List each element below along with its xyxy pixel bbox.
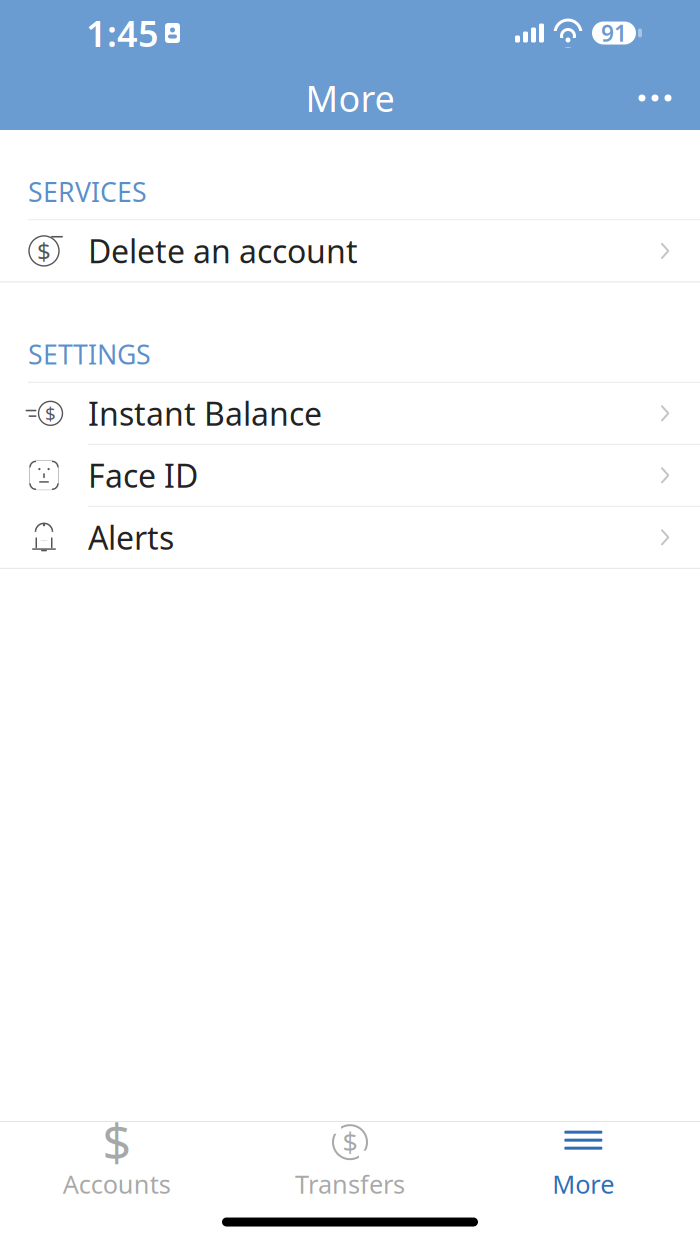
- staticText: $: [37, 235, 51, 267]
- button[interactable]: $: [0, 1122, 233, 1200]
- button[interactable]: More options: [624, 70, 686, 126]
- staticText: 1:45: [86, 9, 159, 57]
- staticText: Alerts: [88, 516, 174, 559]
- staticText: Accounts: [63, 1167, 171, 1201]
- staticText: 91: [601, 18, 627, 48]
- staticText: $: [102, 1108, 131, 1176]
- button[interactable]: More: [467, 1122, 700, 1200]
- staticText: Delete an account: [88, 230, 358, 272]
- button[interactable]: $: [233, 1122, 467, 1200]
- button[interactable]: $: [0, 383, 700, 444]
- staticText: $: [45, 401, 56, 426]
- staticText: $: [342, 1124, 357, 1160]
- button[interactable]: Alerts: [0, 507, 700, 568]
- button[interactable]: Face ID: [0, 445, 700, 506]
- staticText: More: [305, 74, 394, 122]
- staticText: Face ID: [88, 454, 198, 497]
- staticText: More: [552, 1167, 614, 1201]
- staticText: SERVICES: [28, 174, 147, 209]
- staticText: Instant Balance: [88, 392, 322, 435]
- button[interactable]: $: [0, 220, 700, 281]
- staticText: SETTINGS: [28, 336, 151, 372]
- staticText: Transfers: [295, 1167, 405, 1201]
